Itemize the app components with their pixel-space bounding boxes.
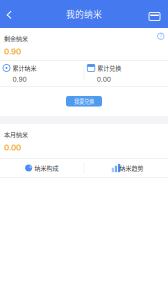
staticText: ? bbox=[159, 33, 162, 40]
staticText: 累计纳米 bbox=[12, 64, 36, 72]
button[interactable]: Back bbox=[0, 0, 22, 28]
button[interactable]: Help bbox=[158, 28, 168, 39]
staticText: 我的纳米 bbox=[66, 8, 102, 20]
button[interactable]: 累计纳米 bbox=[0, 60, 84, 87]
staticText: 我要兑换 bbox=[74, 97, 94, 105]
button[interactable]: 累计兑换 bbox=[84, 60, 168, 87]
staticText: 0.90 bbox=[4, 47, 21, 56]
staticText: 0.00 bbox=[97, 75, 111, 83]
staticText: 纳米构成 bbox=[35, 164, 59, 172]
staticText: 本月纳米 bbox=[4, 130, 28, 139]
staticText: 纳米趋势 bbox=[120, 164, 144, 172]
button[interactable]: 纳米构成 bbox=[0, 158, 84, 178]
button[interactable]: 我要兑换 bbox=[66, 96, 102, 106]
staticText: 累计兑换 bbox=[97, 64, 121, 72]
button[interactable]: My card bbox=[146, 0, 168, 28]
button[interactable]: 纳米趋势 bbox=[84, 158, 168, 178]
staticText: 0.90 bbox=[12, 75, 26, 83]
staticText: 0.00 bbox=[4, 143, 21, 152]
staticText: 剩余纳米 bbox=[4, 34, 28, 43]
